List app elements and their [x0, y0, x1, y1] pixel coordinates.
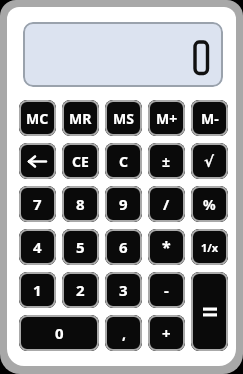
staticText: ± [162, 152, 171, 171]
staticText: , [122, 324, 126, 343]
button[interactable]: 1 [19, 272, 56, 308]
staticText: C [119, 152, 128, 171]
button[interactable]: M+ [148, 100, 185, 136]
button[interactable]: ± [148, 143, 185, 179]
staticText: CE [72, 152, 89, 171]
button[interactable]: C [105, 143, 142, 179]
button[interactable]: 3 [105, 272, 142, 308]
staticText: MR [69, 109, 92, 128]
staticText: √ [204, 153, 215, 170]
button[interactable]: , [105, 315, 142, 351]
staticText: * [162, 236, 171, 258]
button[interactable]: 8 [62, 186, 99, 222]
button[interactable]: 1/x [191, 229, 228, 265]
staticText: M- [201, 109, 219, 128]
staticText: 9 [119, 194, 128, 214]
staticText: 0 [55, 323, 64, 343]
button[interactable]: CE [62, 143, 99, 179]
button[interactable] [19, 143, 56, 179]
button[interactable]: * [148, 229, 185, 265]
button[interactable]: 4 [19, 229, 56, 265]
button[interactable]: M- [191, 100, 228, 136]
staticText: / [163, 194, 170, 214]
button[interactable]: 7 [19, 186, 56, 222]
button[interactable]: - [148, 272, 185, 308]
staticText: M+ [156, 109, 178, 128]
button[interactable]: 5 [62, 229, 99, 265]
staticText: MC [26, 109, 49, 128]
staticText: 1/x [201, 240, 219, 255]
button[interactable]: 0 [19, 315, 99, 351]
staticText: 3 [119, 280, 128, 300]
staticText: - [164, 280, 169, 300]
button[interactable]: √ [191, 143, 228, 179]
staticText: 8 [76, 194, 85, 214]
button[interactable]: % [191, 186, 228, 222]
button[interactable]: / [148, 186, 185, 222]
staticText: 5 [76, 237, 85, 257]
staticText: + [162, 323, 171, 343]
button[interactable]: 2 [62, 272, 99, 308]
staticText: 4 [33, 237, 42, 257]
staticText: MS [113, 109, 134, 128]
staticText: 7 [33, 194, 42, 214]
button[interactable]: 6 [105, 229, 142, 265]
staticText: 1 [33, 280, 42, 300]
button[interactable] [191, 272, 228, 351]
button[interactable]: + [148, 315, 185, 351]
button[interactable]: MS [105, 100, 142, 136]
staticText: 6 [119, 237, 128, 257]
button[interactable]: 9 [105, 186, 142, 222]
button[interactable]: MC [19, 100, 56, 136]
button[interactable]: MR [62, 100, 99, 136]
staticText: % [203, 195, 216, 214]
staticText: 2 [76, 280, 85, 300]
